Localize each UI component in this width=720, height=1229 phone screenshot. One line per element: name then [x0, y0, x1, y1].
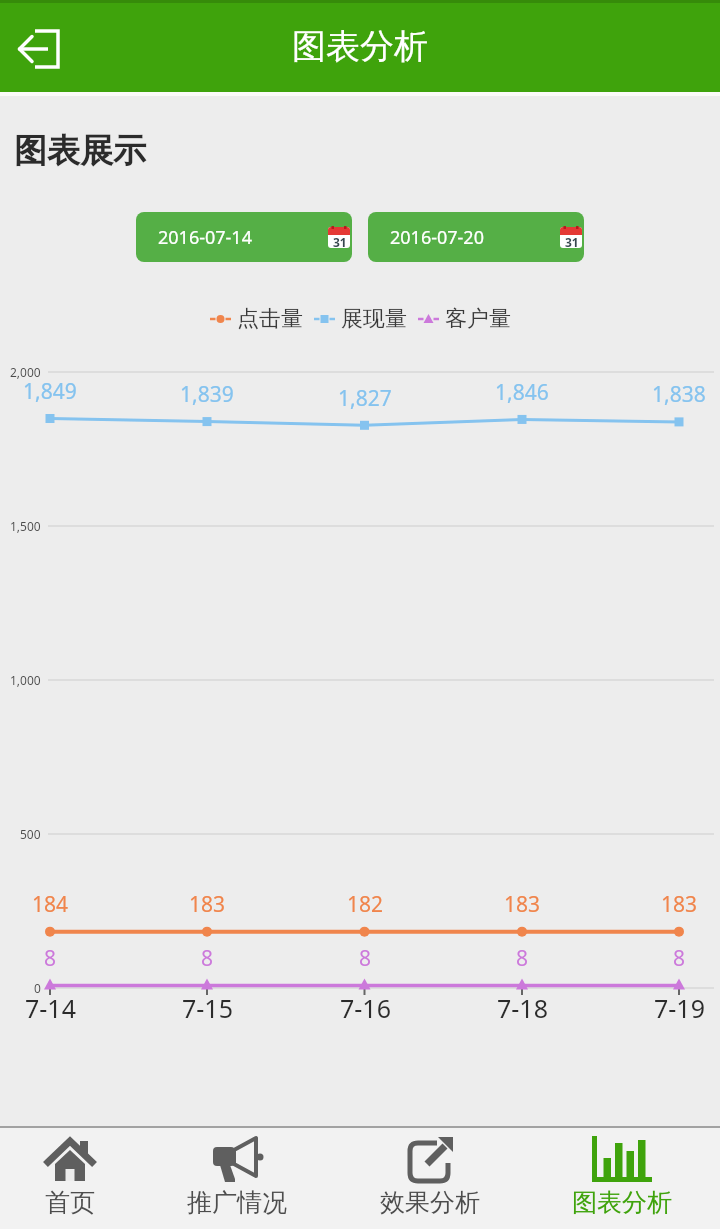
staticText: 184	[32, 890, 69, 919]
staticText: 展现量	[341, 305, 407, 333]
staticText: 31	[565, 234, 579, 250]
staticText: 1,839	[180, 380, 234, 409]
button[interactable]: 首页	[10, 1136, 130, 1228]
staticText: 客户量	[445, 305, 511, 333]
staticText: 点击量	[237, 305, 303, 333]
staticText: 首页	[45, 1187, 95, 1218]
staticText: 7-15	[182, 991, 233, 1025]
staticText: 500	[20, 826, 41, 842]
staticText: 182	[347, 890, 384, 919]
staticText: 0	[34, 980, 41, 996]
staticText: 31	[333, 234, 347, 250]
staticText: 183	[661, 890, 698, 919]
staticText: 7-18	[497, 991, 548, 1025]
button[interactable]: 2016-07-14	[136, 212, 352, 262]
staticText: 8	[44, 944, 57, 973]
staticText: 7-14	[25, 991, 76, 1025]
staticText: 图表分析	[572, 1187, 672, 1218]
staticText: 2016-07-14	[158, 225, 252, 250]
button[interactable]	[6, 14, 72, 80]
staticText: 183	[189, 890, 226, 919]
staticText: 效果分析	[380, 1187, 480, 1218]
staticText: 8	[359, 944, 372, 973]
staticText: 7-19	[654, 991, 705, 1025]
staticText: 183	[504, 890, 541, 919]
staticText: 8	[201, 944, 214, 973]
staticText: 1,000	[10, 672, 41, 688]
staticText: 2016-07-20	[390, 225, 484, 250]
button[interactable]: 推广情况	[157, 1136, 317, 1228]
staticText: 1,849	[23, 377, 77, 406]
button[interactable]: 2016-07-20	[368, 212, 584, 262]
staticText: 1,846	[495, 378, 549, 407]
button[interactable]: 图表分析	[542, 1136, 702, 1228]
staticText: 1,500	[10, 518, 41, 534]
staticText: 图表分析	[292, 25, 428, 68]
staticText: 推广情况	[187, 1187, 287, 1218]
staticText: 8	[673, 944, 686, 973]
staticText: 7-16	[340, 991, 391, 1025]
staticText: 1,838	[652, 380, 706, 409]
staticText: 图表展示	[14, 130, 146, 172]
staticText: 2,000	[10, 364, 41, 380]
button[interactable]: 效果分析	[350, 1136, 510, 1228]
staticText: 8	[516, 944, 529, 973]
staticText: 1,827	[338, 384, 392, 413]
